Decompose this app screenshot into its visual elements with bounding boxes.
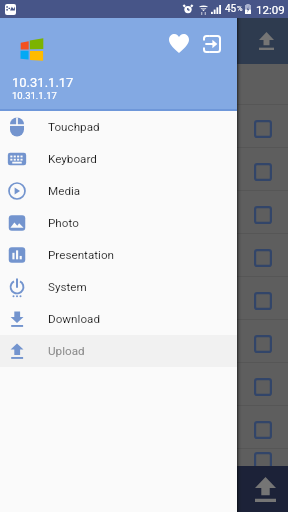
button[interactable]: Touchpad: [0, 111, 237, 143]
staticText: Touchpad: [48, 120, 100, 134]
staticText: 10.31.1.17: [12, 90, 57, 101]
button[interactable]: Photo: [0, 207, 237, 239]
button[interactable]: System: [0, 271, 237, 303]
staticText: Photo: [48, 216, 79, 230]
button[interactable]: [0, 191, 288, 233]
button[interactable]: Connect: [199, 31, 224, 56]
button[interactable]: Download: [0, 303, 237, 335]
button[interactable]: [0, 234, 288, 276]
button[interactable]: Upload: [0, 335, 237, 367]
button[interactable]: [0, 148, 288, 190]
button[interactable]: [0, 363, 288, 405]
button[interactable]: [0, 105, 288, 147]
button[interactable]: Upload: [252, 27, 280, 55]
button[interactable]: Keyboard: [0, 143, 237, 175]
staticText: Media: [48, 184, 81, 198]
staticText: 45: [225, 3, 237, 15]
button[interactable]: Favourites: [166, 31, 191, 56]
button[interactable]: [0, 277, 288, 319]
button[interactable]: [0, 449, 288, 466]
button[interactable]: Upload files: [248, 472, 282, 506]
staticText: 12:09: [256, 3, 285, 16]
button[interactable]: Media: [0, 175, 237, 207]
button[interactable]: [0, 406, 288, 448]
staticText: Presentation: [48, 248, 115, 262]
staticText: 10.31.1.17: [12, 75, 74, 90]
button[interactable]: Presentation: [0, 239, 237, 271]
button[interactable]: [0, 64, 288, 104]
staticText: %: [237, 4, 243, 13]
staticText: Download: [48, 312, 101, 326]
staticText: Keyboard: [48, 152, 97, 166]
staticText: System: [48, 280, 87, 294]
staticText: Upload: [48, 344, 85, 358]
button[interactable]: [0, 320, 288, 362]
